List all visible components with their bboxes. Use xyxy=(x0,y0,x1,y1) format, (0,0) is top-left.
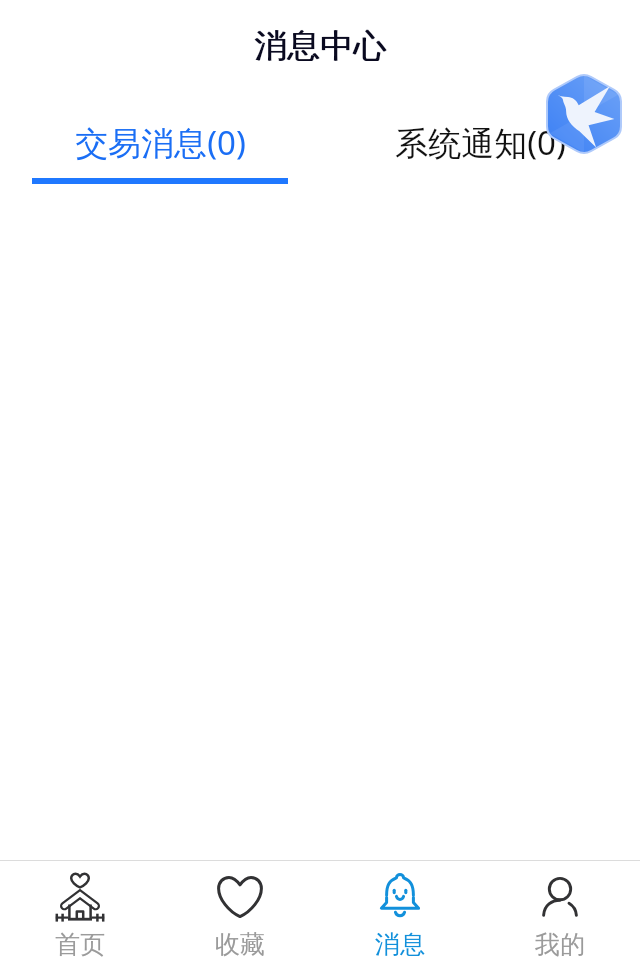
staticText: 消息中心 xyxy=(255,25,387,67)
button[interactable]: 系统通知(0) xyxy=(320,95,640,189)
button[interactable]: App logo xyxy=(546,72,622,156)
staticText: 首页 xyxy=(55,929,105,960)
staticText: 消息 xyxy=(375,929,425,960)
staticText: 我的 xyxy=(535,929,585,960)
staticText: 收藏 xyxy=(215,929,265,960)
staticText: 交易消息(0) xyxy=(75,120,246,165)
button[interactable]: 交易消息(0) xyxy=(0,95,320,189)
button[interactable]: 消息 xyxy=(320,861,480,960)
button[interactable]: 我的 xyxy=(480,861,640,960)
button[interactable]: 首页 xyxy=(0,861,160,960)
staticText: 消息中心 xyxy=(254,25,386,67)
staticText: 系统通知(0) xyxy=(395,120,566,165)
button[interactable]: 收藏 xyxy=(160,861,320,960)
